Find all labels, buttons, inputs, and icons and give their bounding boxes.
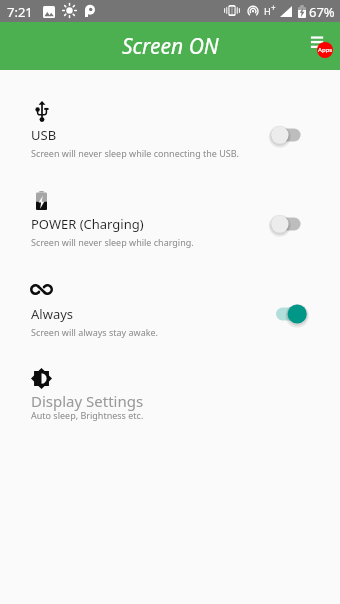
button[interactable]: On <box>275 302 313 326</box>
button[interactable]: Off <box>270 123 308 147</box>
staticText: Apps <box>318 46 333 54</box>
staticText: Always <box>31 305 74 323</box>
staticText: Screen will always stay awake. <box>31 326 158 338</box>
staticText: USB <box>31 126 57 144</box>
staticText: Auto sleep, Brightness etc. <box>31 409 144 421</box>
button[interactable]: Menu <box>303 26 339 62</box>
staticText: Screen will never sleep while connecting… <box>31 147 239 159</box>
staticText: Screen ON <box>122 32 219 61</box>
staticText: 7:21 <box>7 3 33 21</box>
staticText: H <box>264 5 271 17</box>
staticText: 67% <box>309 3 335 21</box>
staticText: Screen will never sleep while charging. <box>31 236 194 248</box>
button[interactable]: Off <box>270 212 308 236</box>
staticText: POWER (Charging) <box>31 215 144 233</box>
staticText: + <box>271 2 276 13</box>
staticText: Display Settings <box>31 391 144 411</box>
